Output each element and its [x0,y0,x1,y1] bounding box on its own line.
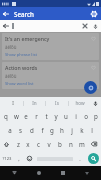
button[interactable]: m [76,137,87,151]
button[interactable]: z [13,137,23,151]
button[interactable]: f [37,123,47,137]
staticText: Show word list [5,81,34,87]
button[interactable]: Backspace [87,137,101,151]
button[interactable]: q [0,109,11,123]
staticText: Search [14,10,34,18]
staticText: f [41,126,44,134]
staticText: e [24,112,28,120]
button[interactable]: y [51,109,61,123]
staticText: p [94,112,98,120]
staticText: m [79,140,85,148]
staticText: k [80,126,84,134]
button[interactable]: Hide keyboard [2,166,27,180]
button[interactable]: v [43,137,54,151]
staticText: ?123 [2,156,12,162]
button[interactable]: In [24,97,45,109]
button[interactable]: Home [27,166,51,180]
staticText: g [50,126,54,134]
button[interactable]: how [69,97,91,109]
staticText: I [12,100,14,106]
button[interactable]: Emoji [24,151,34,166]
button[interactable]: More [75,166,99,180]
staticText: r [35,112,38,120]
button[interactable]: Favorite [90,64,96,70]
button[interactable]: ?123 [0,151,14,166]
button[interactable]: l [87,123,97,137]
staticText: u [64,112,68,120]
button[interactable]: c [33,137,43,151]
staticText: q [4,112,8,120]
staticText: n [69,140,73,148]
button[interactable]: p [91,109,101,123]
staticText: s [19,126,22,134]
button[interactable]: j [67,123,77,137]
button[interactable]: b [54,137,65,151]
button[interactable]: Search [85,151,101,166]
staticText: àéîõü [5,44,17,50]
button[interactable]: t [41,109,51,123]
button[interactable]: Back [0,8,12,20]
button[interactable]: s [15,123,26,137]
staticText: àéîõü [5,73,17,79]
button[interactable]: o [81,109,91,123]
staticText: y [54,112,58,120]
staticText: o [84,112,88,120]
button[interactable]: u [61,109,71,123]
staticText: z [17,140,20,148]
button[interactable]: Is [46,97,68,109]
button[interactable]: , [14,151,24,166]
button[interactable]: Clear [80,21,90,31]
staticText: c [37,140,40,148]
staticText: j [71,126,73,134]
button[interactable]: d [26,123,37,137]
button[interactable]: g [47,123,57,137]
button[interactable]: e [21,109,31,123]
button[interactable]: Recents [51,166,75,180]
staticText: how [75,100,85,106]
button[interactable]: Voice input [91,99,100,108]
staticText: l [91,126,93,134]
staticText: w [14,112,19,120]
staticText: x [26,140,30,148]
button[interactable]: r [31,109,41,123]
staticText: h [60,126,64,134]
button[interactable]: Play [84,81,97,94]
staticText: Show phrase list [5,52,38,58]
button[interactable]: w [11,109,21,123]
staticText: v [47,140,51,148]
staticText: Action words [5,64,38,71]
button[interactable]: It's an emergency [2,33,99,60]
button[interactable]: Shift [0,137,13,151]
button[interactable]: Favorite [90,35,96,41]
staticText: d [30,126,34,134]
staticText: Is [55,100,59,106]
button[interactable]: n [65,137,76,151]
staticText: t [45,112,48,120]
button[interactable]: I [2,97,23,109]
staticText: , [18,155,20,162]
button[interactable]: Space [34,151,75,166]
staticText: i [75,112,77,120]
staticText: a [8,126,12,134]
button[interactable]: k [77,123,87,137]
button[interactable]: a [4,123,15,137]
staticText: . [79,155,81,162]
button[interactable]: Navigate back [1,21,11,31]
button[interactable]: Voice search [90,21,100,31]
staticText: It's an emergency [5,35,50,42]
button[interactable]: Action words [2,62,99,89]
button[interactable]: x [23,137,33,151]
staticText: In [32,100,37,106]
button[interactable]: i [71,109,81,123]
staticText: b [58,140,62,148]
button[interactable]: . [75,151,85,166]
button[interactable]: h [57,123,67,137]
button[interactable]: Settings [88,8,100,20]
